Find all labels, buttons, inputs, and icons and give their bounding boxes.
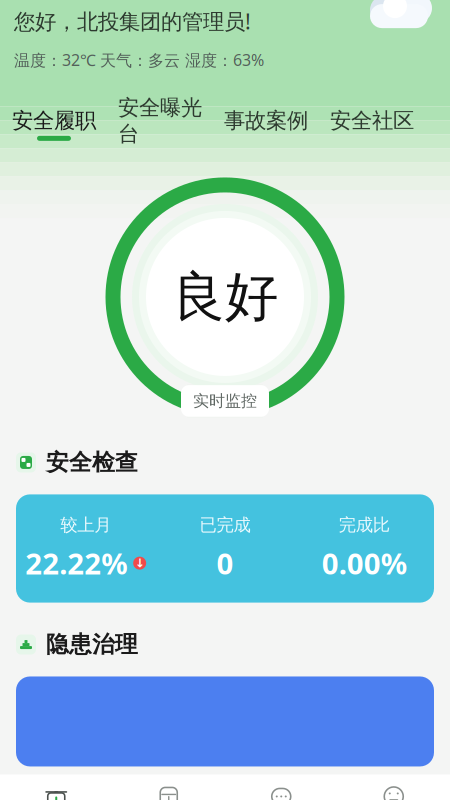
staticText: 事故案例 (224, 108, 308, 134)
staticText: 22.22% (25, 544, 127, 583)
staticText: 安全检查 (46, 448, 138, 476)
staticText: 实时监控 (193, 391, 257, 411)
button[interactable]: 消息 (225, 778, 337, 800)
staticText: 完成比 (339, 514, 390, 536)
button[interactable]: 较上月 (16, 494, 434, 603)
button[interactable]: 事故案例 (224, 108, 308, 141)
staticText: 温度：32℃ 天气：多云 湿度：63% (14, 49, 264, 70)
button[interactable]: 功能 (112, 778, 225, 800)
button[interactable]: 首页 (0, 778, 112, 800)
button[interactable]: 安全曝光台 (118, 94, 202, 154)
staticText: 较上月 (60, 514, 111, 536)
staticText: ↓ (135, 556, 145, 570)
staticText: 安全曝光台 (118, 94, 202, 147)
staticText: 安全履职 (12, 108, 96, 134)
staticText: 已完成 (199, 514, 250, 536)
staticText: 0 (216, 544, 233, 583)
staticText: 隐患治理 (46, 631, 138, 658)
button[interactable]: 安全社区 (330, 108, 414, 141)
button[interactable]: 我的 (337, 778, 450, 800)
staticText: 0.00% (322, 544, 407, 583)
staticText: 您好，北投集团的管理员! (14, 7, 251, 35)
button[interactable]: 安全履职 (12, 108, 96, 141)
staticText: 安全社区 (330, 108, 414, 134)
staticText: 良好 (172, 264, 278, 330)
